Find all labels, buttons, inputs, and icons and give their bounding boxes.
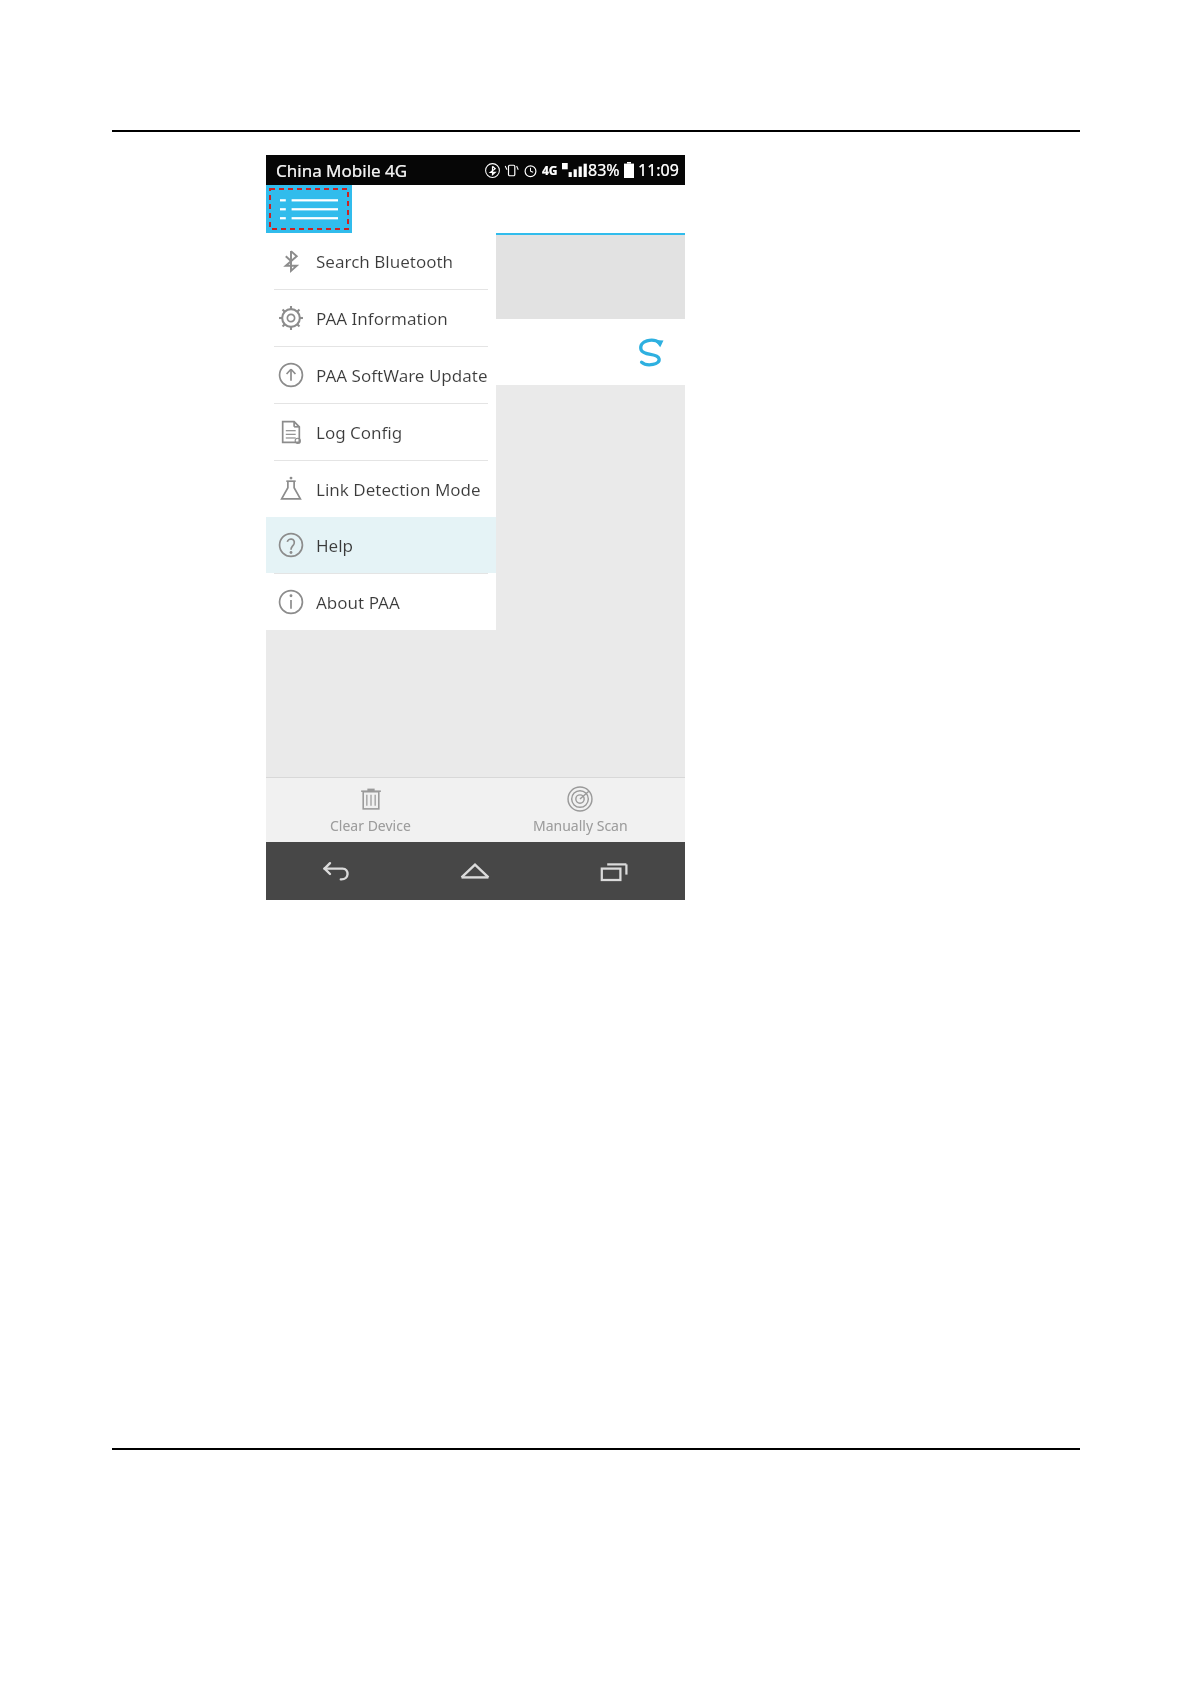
button[interactable]: PAA Information	[266, 290, 496, 346]
button[interactable]: Home	[405, 842, 545, 900]
staticText: Log Config	[316, 421, 403, 444]
button[interactable]: Link Detection Mode	[266, 461, 496, 517]
staticText: Manually Scan	[533, 816, 628, 835]
staticText: China Mobile 4G	[276, 159, 408, 182]
button[interactable]: PAA SoftWare Update	[266, 347, 496, 403]
button[interactable]: Log Config	[266, 404, 496, 460]
staticText: Output Current:23mA	[272, 289, 446, 312]
button[interactable]: Manually Scan	[475, 778, 685, 842]
staticText: Help	[316, 534, 354, 557]
staticText: Clear Device	[330, 816, 411, 835]
button[interactable]: Search Bluetooth	[266, 233, 496, 289]
staticText: PAA SoftWare Update	[316, 364, 488, 387]
staticText: Search Bluetooth	[316, 250, 454, 273]
staticText: Link Detection Mode	[316, 478, 481, 501]
staticText: C029D	[284, 339, 343, 365]
staticText: 4G	[542, 162, 558, 178]
button[interactable]: Clear Device	[266, 778, 475, 842]
staticText: 11:09	[638, 159, 679, 181]
staticText: 83%	[588, 159, 620, 181]
button[interactable]: Help	[266, 517, 496, 573]
button[interactable]: Menu	[266, 185, 352, 233]
button[interactable]: Recent apps	[545, 842, 685, 900]
button[interactable]: Refresh	[633, 335, 667, 369]
button[interactable]: About PAA	[266, 574, 496, 630]
button[interactable]: C029D	[266, 319, 685, 385]
staticText: Charging	[340, 253, 414, 276]
staticText: About PAA	[316, 591, 400, 614]
button[interactable]: Back	[266, 842, 405, 900]
staticText: PAA Information	[316, 307, 448, 330]
